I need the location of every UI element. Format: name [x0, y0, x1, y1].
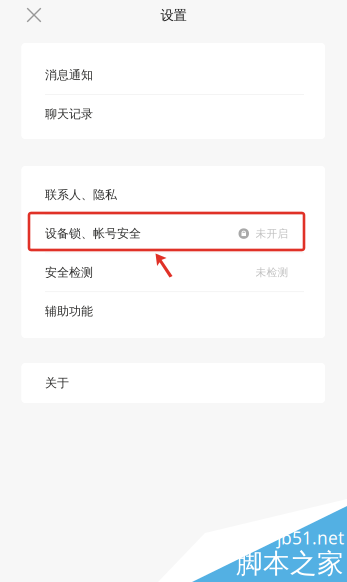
button[interactable]: 关于 — [21, 364, 325, 402]
staticText: 设置 — [160, 7, 186, 23]
button[interactable]: 设备锁、帐号安全 — [21, 215, 325, 253]
staticText: 辅助功能 — [45, 304, 93, 318]
button[interactable]: Close — [20, 1, 48, 29]
staticText: 未检测 — [255, 266, 288, 279]
staticText: 脚本之家 — [236, 547, 344, 580]
staticText: 联系人、隐私 — [45, 187, 117, 202]
staticText: 设备锁、帐号安全 — [45, 226, 141, 241]
staticText: jb51.net — [277, 526, 344, 549]
staticText: 未开启 — [255, 227, 288, 240]
button[interactable]: 安全检测 — [21, 253, 325, 291]
button[interactable]: 聊天记录 — [21, 95, 325, 133]
button[interactable]: 辅助功能 — [21, 292, 325, 330]
staticText: 消息通知 — [45, 68, 93, 82]
button[interactable]: 消息通知 — [21, 56, 325, 94]
button[interactable]: 联系人、隐私 — [21, 176, 325, 214]
staticText: 关于 — [45, 376, 69, 390]
staticText: 聊天记录 — [45, 106, 93, 121]
staticText: 安全检测 — [45, 265, 93, 280]
